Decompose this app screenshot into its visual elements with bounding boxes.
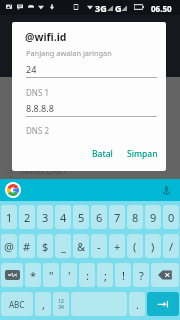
staticText: 8.8.8.8 — [26, 102, 54, 114]
staticText: : — [86, 268, 89, 283]
button[interactable]: + — [109, 234, 125, 258]
button[interactable]: 0 — [163, 205, 179, 229]
button[interactable]: # — [19, 234, 35, 258]
staticText: # — [23, 239, 31, 254]
staticText: , — [42, 297, 45, 312]
staticText: " — [49, 268, 54, 283]
button[interactable]: ? — [133, 263, 149, 287]
staticText: @wifi.id — [25, 30, 67, 44]
staticText: 4 — [60, 210, 67, 225]
button[interactable]: Backspace — [151, 263, 179, 287]
staticText: 1 — [6, 210, 13, 225]
button[interactable]: ABC — [1, 292, 33, 316]
button[interactable]: Enter — [147, 292, 179, 316]
staticText: 6 — [96, 210, 103, 225]
staticText: ( — [133, 239, 137, 254]
staticText: 8 — [132, 210, 139, 225]
button[interactable]: / — [163, 234, 179, 258]
staticText: G — [115, 2, 122, 14]
staticText: 12 34 — [58, 298, 64, 311]
button[interactable]: , — [35, 292, 51, 316]
button[interactable]: Voice input — [159, 183, 173, 197]
staticText: ; — [104, 268, 107, 283]
button[interactable]: Space — [71, 292, 127, 316]
staticText: 7 — [114, 210, 121, 225]
button[interactable]: ) — [145, 234, 161, 258]
staticText: 0 — [168, 210, 175, 225]
button[interactable]: _ — [55, 234, 71, 258]
staticText: * — [30, 268, 37, 283]
button[interactable]: 5 — [73, 205, 89, 229]
staticText: Simpan — [127, 148, 158, 160]
button[interactable]: 8 — [127, 205, 143, 229]
staticText: 2 — [24, 210, 31, 225]
staticText: SMKN3-LINK1 — [20, 167, 67, 177]
staticText: ! — [122, 268, 125, 283]
staticText: 5 — [78, 210, 85, 225]
button[interactable]: Batal — [86, 142, 119, 166]
button[interactable]: @ — [1, 234, 17, 258]
button[interactable]: " — [43, 263, 59, 287]
button[interactable]: ; — [97, 263, 113, 287]
staticText: @ — [4, 239, 14, 254]
staticText: Panjang awalan jaringan — [26, 48, 112, 58]
button[interactable]: $ — [37, 234, 53, 258]
button[interactable]: * — [25, 263, 41, 287]
button[interactable]: 9 — [145, 205, 161, 229]
staticText: - — [97, 239, 101, 254]
staticText: 3 — [42, 210, 49, 225]
staticText: $ — [42, 239, 49, 254]
staticText: & — [77, 239, 86, 254]
button[interactable]: 4 — [55, 205, 71, 229]
button[interactable]: & — [73, 234, 89, 258]
button[interactable]: Google — [5, 182, 21, 198]
button[interactable]: 1 — [1, 205, 17, 229]
button[interactable]: ' — [61, 263, 77, 287]
button[interactable]: Simpan — [121, 142, 164, 166]
button[interactable]: ( — [127, 234, 143, 258]
staticText: ' — [68, 268, 71, 283]
staticText: ABC — [9, 299, 25, 310]
staticText: 24 — [26, 63, 37, 75]
staticText: _ — [61, 239, 66, 254]
staticText: 06.50 — [151, 3, 172, 14]
staticText: =\< — [8, 271, 18, 279]
button[interactable]: 3 — [37, 205, 53, 229]
button[interactable]: 2 — [19, 205, 35, 229]
staticText: ? — [139, 268, 144, 283]
staticText: 3G — [95, 2, 107, 14]
staticText: DNS 1 — [26, 87, 49, 98]
button[interactable]: Symbols — [1, 263, 23, 287]
staticText: Batal — [92, 148, 113, 160]
staticText: + — [114, 239, 121, 254]
staticText: / — [169, 239, 174, 254]
staticText: 9 — [150, 210, 157, 225]
button[interactable]: ! — [115, 263, 131, 287]
staticText: . — [136, 297, 139, 312]
button[interactable]: 7 — [109, 205, 125, 229]
button[interactable]: - — [91, 234, 107, 258]
button[interactable]: . — [129, 292, 145, 316]
staticText: DNS 2 — [26, 125, 49, 136]
button[interactable]: : — [79, 263, 95, 287]
button[interactable]: 6 — [91, 205, 107, 229]
staticText: ) — [151, 239, 155, 254]
button[interactable]: Numbers — [53, 292, 69, 316]
